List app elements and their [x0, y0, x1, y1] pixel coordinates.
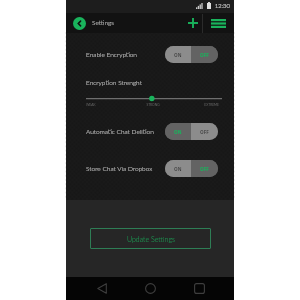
staticText: OFF: [200, 166, 209, 172]
button[interactable]: Store Chat Via Dropbox: [86, 160, 218, 177]
button[interactable]: Home: [137, 277, 163, 300]
button[interactable]: Automatic Chat Delition: [86, 123, 218, 140]
staticText: ON: [174, 166, 182, 172]
staticText: Automatic Chat Delition: [86, 128, 154, 136]
staticText: Settings: [92, 19, 114, 27]
staticText: WEAK: [86, 103, 131, 107]
button[interactable]: ON: [165, 160, 218, 177]
staticText: OFF: [200, 129, 209, 135]
staticText: ON: [174, 52, 182, 58]
button[interactable]: Back: [73, 17, 86, 30]
button[interactable]: Menu: [203, 13, 234, 33]
button[interactable]: Recents: [186, 277, 212, 300]
staticText: STRONG: [131, 103, 175, 107]
button[interactable]: Update Settings: [90, 228, 211, 249]
button[interactable]: Back: [89, 277, 115, 300]
button[interactable]: Enable Encryption: [86, 46, 218, 63]
button[interactable]: Add: [183, 13, 202, 33]
staticText: Enable Encryption: [86, 51, 137, 59]
button[interactable]: [86, 95, 222, 102]
button[interactable]: ON: [165, 123, 218, 140]
staticText: Update Settings: [127, 235, 175, 243]
staticText: EXTREME: [175, 103, 219, 107]
staticText: ON: [174, 129, 182, 135]
staticText: 12:30: [215, 2, 230, 9]
staticText: OFF: [200, 52, 209, 58]
staticText: Store Chat Via Dropbox: [86, 165, 153, 173]
button[interactable]: ON: [165, 46, 218, 63]
staticText: Encryption Strenght: [86, 79, 142, 87]
